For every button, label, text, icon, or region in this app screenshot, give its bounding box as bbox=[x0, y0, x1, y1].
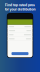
button[interactable] bbox=[11, 52, 28, 55]
staticText: Find top rated pros bbox=[5, 3, 35, 7]
staticText: for your distribution bbox=[4, 7, 35, 11]
